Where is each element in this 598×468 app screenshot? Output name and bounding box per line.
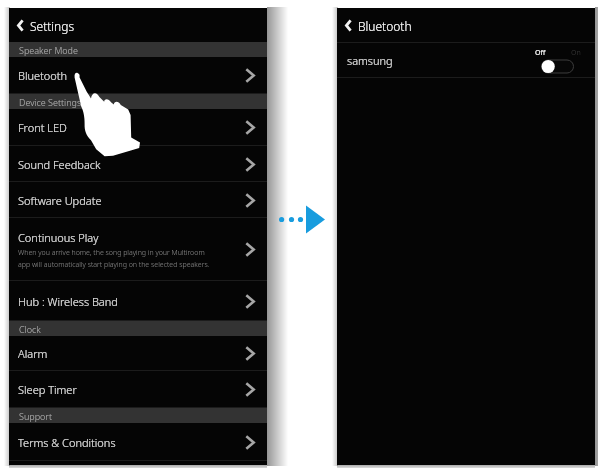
staticText: Continuous Play bbox=[18, 230, 99, 245]
staticText: Settings bbox=[30, 18, 75, 34]
button[interactable]: Software Update bbox=[9, 182, 267, 218]
staticText: Bluetooth bbox=[18, 68, 68, 83]
button[interactable]: Back bbox=[13, 14, 28, 37]
button[interactable]: Front LED bbox=[9, 109, 267, 146]
staticText: When you arrive home, the song playing i… bbox=[18, 248, 210, 269]
staticText: Off bbox=[535, 48, 546, 58]
staticText: Alarm bbox=[18, 346, 48, 361]
button[interactable]: Bluetooth toggle, Off bbox=[535, 48, 581, 74]
staticText: Sound Feedback bbox=[18, 157, 101, 172]
staticText: Software Update bbox=[18, 193, 102, 208]
button[interactable]: Hub : Wireless Band bbox=[9, 281, 267, 321]
staticText: Sleep Timer bbox=[18, 382, 77, 397]
staticText: Speaker Mode bbox=[19, 44, 78, 56]
staticText: samsung bbox=[347, 53, 393, 68]
button[interactable]: Sleep Timer bbox=[9, 371, 267, 408]
staticText: Support bbox=[19, 410, 52, 422]
button[interactable]: Bluetooth bbox=[9, 57, 267, 94]
staticText: On bbox=[571, 48, 581, 58]
staticText: Hub : Wireless Band bbox=[18, 294, 118, 309]
button[interactable]: Back bbox=[341, 14, 356, 37]
staticText: Terms & Conditions bbox=[18, 435, 116, 450]
button[interactable]: Alarm bbox=[9, 336, 267, 371]
button[interactable]: Terms & Conditions bbox=[9, 423, 267, 461]
staticText: Bluetooth bbox=[358, 18, 412, 34]
button[interactable]: samsung bbox=[337, 43, 595, 78]
button[interactable]: Sound Feedback bbox=[9, 146, 267, 182]
staticText: Front LED bbox=[18, 120, 67, 135]
staticText: Clock bbox=[19, 323, 41, 335]
staticText: Device Settings bbox=[19, 96, 82, 108]
button[interactable]: Continuous Play bbox=[9, 218, 267, 281]
